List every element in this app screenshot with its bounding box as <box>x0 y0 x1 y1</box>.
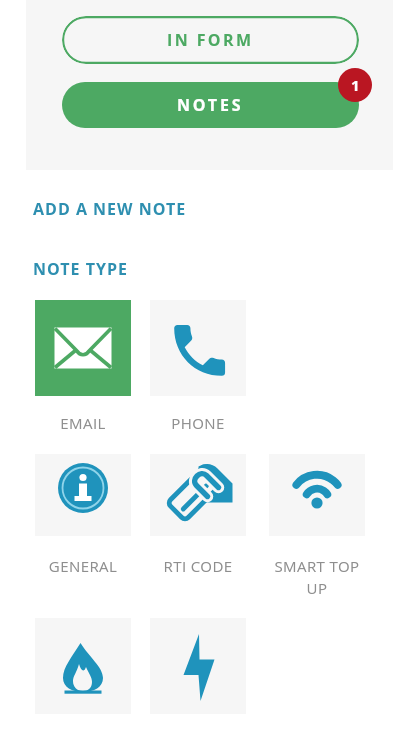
staticText: RTI CODE <box>150 556 246 576</box>
staticText: SMART TOP UP <box>269 556 365 599</box>
button[interactable]: Phone <box>150 300 246 396</box>
button[interactable]: Smart top up <box>269 454 365 536</box>
button[interactable]: General <box>35 454 131 536</box>
staticText: NOTES <box>177 94 244 116</box>
staticText: ADD A NEW NOTE <box>33 198 187 220</box>
button[interactable]: Gas <box>35 618 131 714</box>
button[interactable]: RTI code <box>150 454 246 536</box>
staticText: NOTE TYPE <box>33 258 128 280</box>
button[interactable]: NOTES <box>62 82 359 128</box>
button[interactable]: Email <box>35 300 131 396</box>
button[interactable]: Electricity <box>150 618 246 714</box>
staticText: 1 <box>351 75 360 95</box>
button[interactable]: IN FORM <box>62 16 359 64</box>
staticText: GENERAL <box>35 556 131 576</box>
staticText: IN FORM <box>167 29 254 51</box>
staticText: EMAIL <box>35 413 131 433</box>
staticText: PHONE <box>150 413 246 433</box>
